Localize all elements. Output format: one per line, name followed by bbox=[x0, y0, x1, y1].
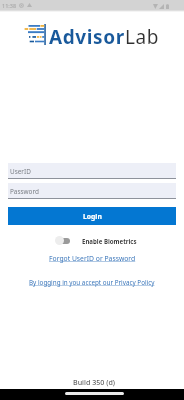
staticText: Enable Biometrics bbox=[82, 237, 137, 245]
button[interactable]: Enable Biometrics bbox=[54, 236, 139, 245]
button[interactable]: By logging in you accept our Privacy Pol… bbox=[27, 277, 157, 288]
staticText: Lab bbox=[125, 24, 160, 50]
staticText: 11:38 bbox=[2, 2, 17, 9]
button[interactable]: Forgot UserID or Password bbox=[47, 253, 138, 264]
staticText: Login bbox=[83, 212, 102, 221]
staticText: Password bbox=[10, 187, 39, 196]
button[interactable]: Login bbox=[8, 207, 176, 225]
button[interactable]: UserID bbox=[8, 163, 176, 178]
staticText: Advisor bbox=[49, 24, 125, 50]
staticText: UserID bbox=[10, 167, 31, 176]
staticText: Build 350 (d) bbox=[73, 377, 116, 387]
button[interactable]: Password bbox=[8, 183, 176, 198]
